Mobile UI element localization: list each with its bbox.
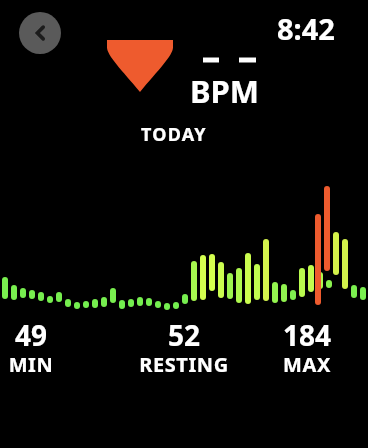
staticText: MIN [0, 351, 62, 381]
button[interactable]: Back [19, 12, 61, 54]
staticText: 52 [123, 316, 245, 350]
staticText: 49 [0, 316, 62, 350]
button[interactable]: 52 [123, 316, 245, 386]
staticText: MAX [246, 351, 368, 381]
staticText: 184 [246, 316, 368, 350]
staticText: 8:42 [277, 9, 335, 48]
staticText: TODAY [141, 122, 207, 147]
button[interactable]: 49 [0, 316, 62, 386]
button[interactable]: 184 [246, 316, 368, 386]
staticText: BPM [190, 70, 260, 112]
staticText: RESTING [123, 351, 245, 381]
